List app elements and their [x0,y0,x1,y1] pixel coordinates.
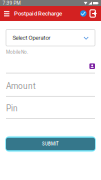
button[interactable]: SUBMIT [6,136,95,152]
staticText: SUBMIT [42,141,59,147]
button[interactable]: Pick contact [89,63,95,69]
staticText: Mobile No. [6,49,28,55]
staticText: Postpaid Recharge [14,10,62,17]
button[interactable]: Menu [0,6,14,21]
button[interactable]: Select Operator [6,29,95,46]
button[interactable]: Logout [89,6,101,21]
button[interactable]: Verified [77,6,89,21]
staticText: Amount [6,81,36,91]
staticText: Select Operator [12,34,50,41]
staticText: Pin [6,103,18,113]
staticText: 7:39 PM [2,0,20,6]
